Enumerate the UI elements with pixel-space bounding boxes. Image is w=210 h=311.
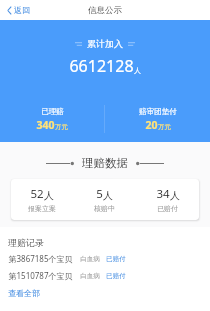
staticText: 第3867185个宝贝 (8, 253, 73, 264)
staticText: 6612128 (69, 55, 134, 77)
button[interactable]: 第3867185个宝贝 (0, 253, 210, 264)
button[interactable]: 52 (11, 179, 73, 220)
staticText: 万元 (55, 123, 68, 131)
staticText: 人 (103, 189, 113, 202)
button[interactable]: 第1510787个宝贝 (0, 270, 210, 281)
staticText: 人 (170, 189, 180, 202)
staticText: 查看全部 (8, 288, 40, 298)
button[interactable]: 赔审团垫付 (105, 107, 210, 132)
staticText: 已理赔 (41, 107, 64, 116)
staticText: 已赔付 (106, 272, 126, 280)
staticText: 340 (36, 118, 55, 132)
staticText: 理赔记录 (8, 237, 44, 248)
staticText: 20 (145, 118, 158, 132)
staticText: 52 (30, 186, 44, 202)
staticText: 已赔付 (157, 204, 178, 213)
staticText: 累计加入 (87, 38, 123, 49)
button[interactable]: 返回 (4, 2, 33, 18)
staticText: 核赔中 (94, 204, 115, 213)
staticText: 信息公示 (88, 5, 122, 16)
button[interactable]: 34 (136, 179, 199, 220)
staticText: 赔审团垫付 (139, 107, 177, 116)
staticText: 白血病 (80, 272, 100, 280)
staticText: 理赔数据 (82, 156, 128, 170)
staticText: 报案立案 (28, 204, 56, 213)
staticText: 已赔付 (106, 255, 126, 263)
button[interactable]: 已理赔 (0, 107, 104, 132)
staticText: 5 (96, 186, 103, 202)
staticText: 万元 (158, 123, 171, 131)
staticText: 白血病 (80, 255, 100, 263)
button[interactable]: 查看全部 (0, 288, 40, 298)
staticText: 第1510787个宝贝 (8, 270, 73, 281)
staticText: 人 (134, 66, 141, 75)
button[interactable]: 5 (73, 179, 136, 220)
staticText: 34 (156, 186, 170, 202)
staticText: 返回 (14, 5, 30, 15)
staticText: 人 (44, 189, 54, 202)
